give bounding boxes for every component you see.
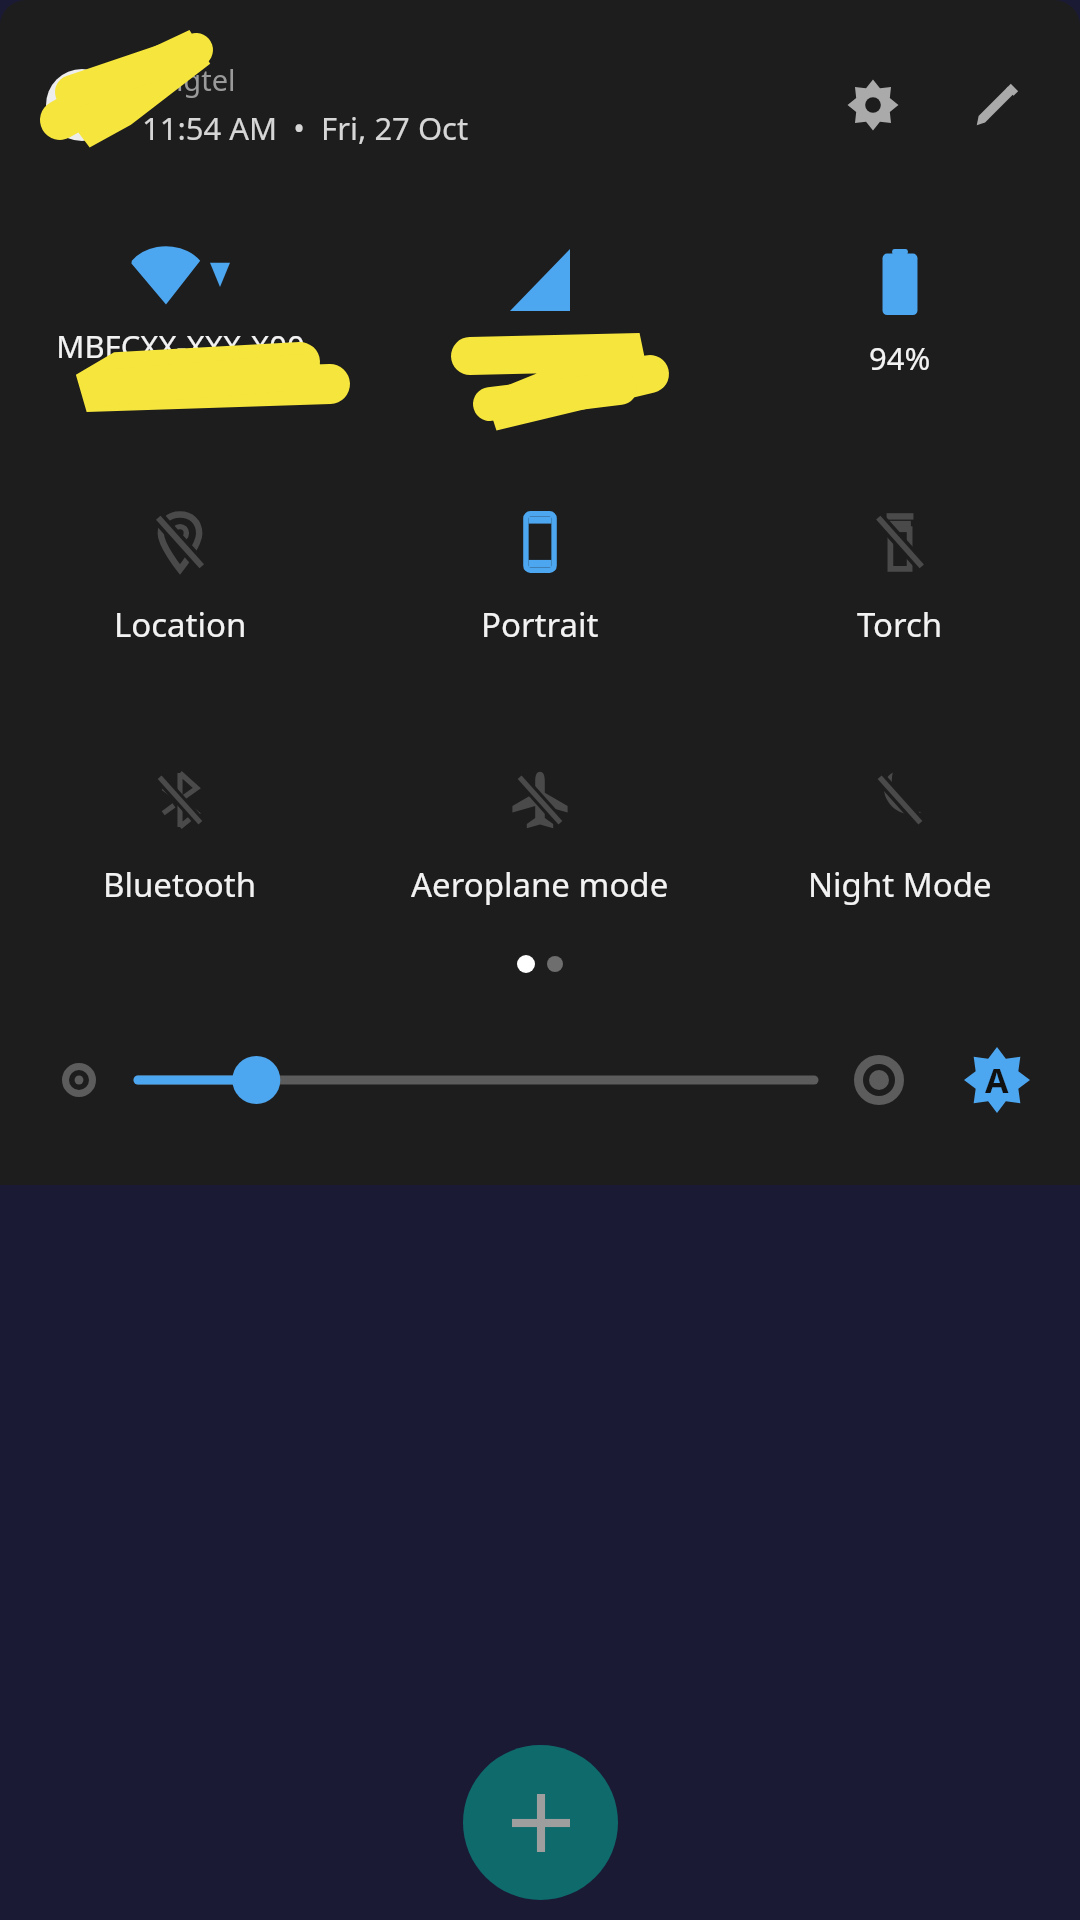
button[interactable]: MBFCXX-XXX-X00 3 bbox=[0, 245, 360, 409]
button[interactable]: Location bbox=[0, 510, 360, 647]
staticText: Singtel bbox=[142, 60, 236, 99]
button[interactable]: Brightness slider bbox=[138, 1053, 814, 1107]
button[interactable]: Singtel bbox=[360, 245, 720, 373]
button[interactable]: Torch bbox=[720, 510, 1080, 647]
staticText: Torch bbox=[857, 602, 943, 647]
button[interactable]: Auto brightness bbox=[962, 1045, 1032, 1115]
button[interactable]: Edit tiles bbox=[960, 68, 1034, 142]
button[interactable]: Portrait bbox=[360, 510, 720, 647]
button[interactable]: Night Mode bbox=[720, 770, 1080, 907]
staticText: Night Mode bbox=[808, 862, 992, 907]
staticText: MBFCXX-XXX-X00 3 bbox=[56, 325, 305, 409]
staticText: 94% bbox=[869, 337, 931, 379]
button[interactable]: Aeroplane mode bbox=[360, 770, 720, 907]
button[interactable]: Bluetooth bbox=[0, 770, 360, 907]
staticText: Location bbox=[114, 602, 247, 647]
staticText: Singtel bbox=[490, 331, 590, 373]
button[interactable]: User account bbox=[46, 69, 118, 141]
button[interactable]: 94% bbox=[720, 245, 1080, 379]
staticText: Bluetooth bbox=[103, 862, 257, 907]
staticText: 11:54 AM • Fri, 27 Oct bbox=[142, 107, 469, 149]
staticText: Aeroplane mode bbox=[411, 862, 669, 907]
button[interactable]: Add bbox=[463, 1745, 618, 1900]
staticText: Portrait bbox=[481, 602, 599, 647]
staticText: A bbox=[985, 1057, 1009, 1103]
button[interactable]: Settings bbox=[836, 68, 910, 142]
